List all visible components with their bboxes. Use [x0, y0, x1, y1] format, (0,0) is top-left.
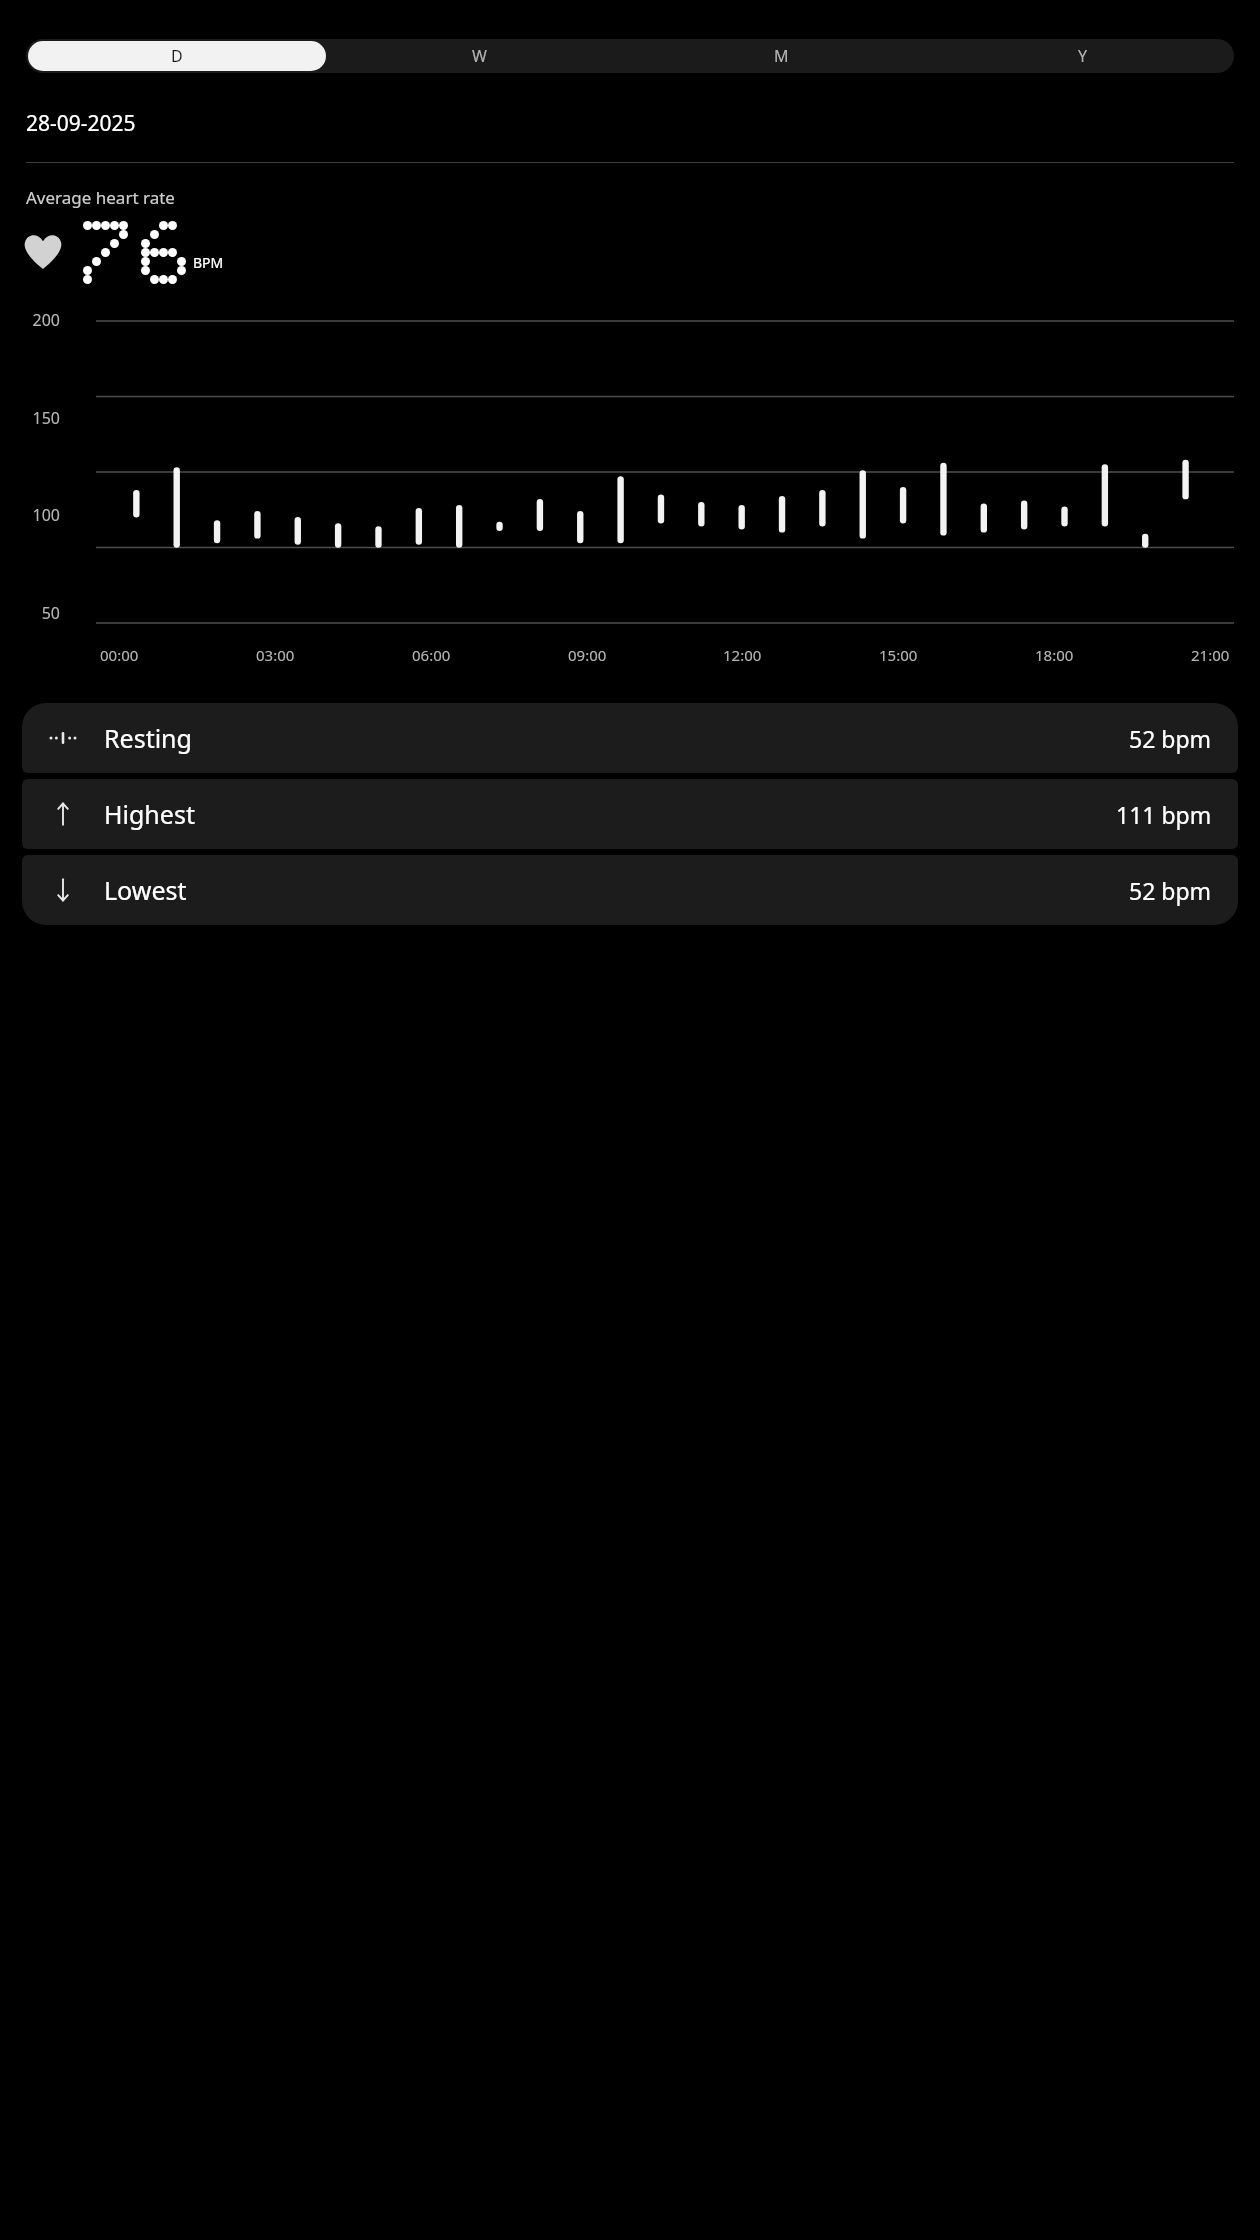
- staticText: 06:00: [412, 645, 451, 665]
- staticText: 50: [0, 602, 60, 624]
- button[interactable]: Highest: [22, 779, 1238, 849]
- staticText: 03:00: [256, 645, 295, 665]
- other: Highest: [48, 799, 78, 829]
- staticText: 100: [0, 504, 60, 526]
- staticText: 09:00: [568, 645, 607, 665]
- button[interactable]: Resting: [22, 703, 1238, 773]
- button[interactable]: D: [28, 41, 326, 71]
- staticText: Y: [1078, 45, 1088, 67]
- button[interactable]: W: [330, 41, 628, 71]
- staticText: 0: [0, 699, 60, 721]
- staticText: 52 bpm: [1129, 723, 1212, 754]
- staticText: 21:00: [1191, 645, 1230, 665]
- staticText: Average heart rate: [26, 186, 175, 209]
- staticText: Highest: [104, 797, 195, 831]
- staticText: 111 bpm: [1116, 799, 1212, 830]
- staticText: 00:00: [100, 645, 139, 665]
- staticText: 12:00: [723, 645, 762, 665]
- other: Lowest: [48, 875, 78, 905]
- staticText: 28-09-2025: [26, 109, 136, 138]
- staticText: M: [774, 45, 789, 67]
- other: Resting: [48, 723, 78, 753]
- staticText: BPM: [193, 253, 224, 272]
- staticText: Resting: [104, 721, 192, 755]
- staticText: Lowest: [104, 873, 187, 907]
- staticText: 15:00: [879, 645, 918, 665]
- staticText: 200: [0, 309, 60, 331]
- button[interactable]: Y: [934, 41, 1232, 71]
- staticText: D: [171, 45, 183, 67]
- staticText: 150: [0, 407, 60, 429]
- button[interactable]: Lowest: [22, 855, 1238, 925]
- button[interactable]: M: [632, 41, 930, 71]
- staticText: 18:00: [1035, 645, 1074, 665]
- staticText: 52 bpm: [1129, 875, 1212, 906]
- staticText: W: [472, 45, 487, 67]
